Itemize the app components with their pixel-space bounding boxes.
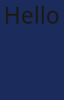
staticText: Hello xyxy=(4,0,60,30)
